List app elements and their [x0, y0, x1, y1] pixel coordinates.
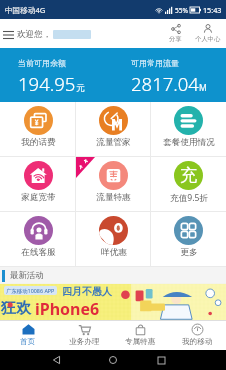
button[interactable]: 在线客服 [0, 212, 76, 266]
button[interactable]: 充 [151, 157, 226, 211]
button[interactable]: 分享 [167, 23, 184, 44]
staticText: 我的话费 [21, 137, 56, 148]
button[interactable]: Home [101, 350, 125, 370]
staticText: 充 [180, 165, 197, 186]
staticText: 元 [76, 83, 85, 94]
staticText: M [199, 82, 207, 94]
button[interactable]: 流量特惠 [76, 157, 151, 211]
button[interactable]: 个人中心 [193, 23, 223, 44]
staticText: 充值9.5折 [170, 192, 208, 204]
staticText: 欢迎您， [17, 29, 52, 40]
staticText: 广东移动10086 APP [6, 287, 55, 294]
staticText: iPhone6 [35, 298, 100, 320]
staticText: 个人中心 [195, 35, 221, 43]
button[interactable]: 套餐使用情况 [151, 102, 226, 156]
staticText: 四月不愚人 [62, 285, 112, 298]
staticText: 分享 [169, 35, 182, 43]
button[interactable]: Recents [149, 350, 173, 370]
button[interactable]: 业务办理 [56, 321, 112, 350]
button[interactable]: 我的移动 [169, 321, 226, 350]
staticText: 专属特惠 [125, 337, 156, 347]
button[interactable]: 流量管家 [76, 102, 151, 156]
staticText: 中国移动4G [5, 5, 46, 15]
staticText: 狂欢 [1, 299, 31, 318]
staticText: 在线客服 [21, 247, 56, 258]
staticText: 首页 [20, 337, 36, 347]
staticText: 我的移动 [182, 337, 213, 347]
staticText: 业务办理 [69, 337, 100, 347]
button[interactable]: 咩优惠 [76, 212, 151, 266]
button[interactable]: Back [45, 350, 69, 370]
staticText: 最新活动 [10, 270, 44, 281]
staticText: 15:43 [203, 5, 222, 15]
button[interactable]: 当前可用余额 [0, 48, 113, 102]
staticText: 家庭宽带 [21, 192, 56, 203]
button[interactable]: 可用常用流量 [113, 48, 226, 102]
button[interactable]: Menu [0, 22, 17, 46]
button[interactable]: 我的话费 [0, 102, 76, 156]
staticText: 2817.04 [131, 71, 199, 96]
staticText: 流量特惠 [96, 192, 131, 203]
staticText: 套餐使用情况 [163, 137, 215, 148]
staticText: 咩优惠 [101, 247, 127, 258]
button[interactable]: 专属特惠 [112, 321, 169, 350]
button[interactable]: 家庭宽带 [0, 157, 76, 211]
staticText: 可用常用流量 [131, 58, 179, 68]
staticText: 55% [175, 6, 189, 15]
staticText: 流量管家 [96, 137, 131, 148]
button[interactable]: 广东移动10086 APP [0, 284, 226, 320]
button[interactable]: 首页 [0, 321, 56, 350]
staticText: 当前可用余额 [18, 58, 66, 68]
button[interactable]: 更多 [151, 212, 226, 266]
staticText: 194.95 [18, 71, 76, 96]
staticText: 更多 [180, 247, 198, 258]
